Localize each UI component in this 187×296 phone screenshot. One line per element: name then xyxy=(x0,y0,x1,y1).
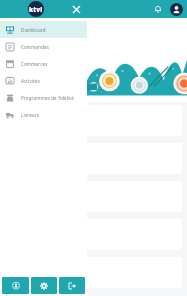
button[interactable]: NOMBRE D'OFFRES ACTIVES xyxy=(2,257,182,288)
staticText: AVIS xyxy=(9,111,18,116)
button[interactable]: ktvi home xyxy=(28,1,44,17)
button[interactable]: Account xyxy=(170,3,183,16)
button[interactable]: Notifications xyxy=(151,2,165,16)
button[interactable]: Close menu xyxy=(68,1,84,17)
button[interactable]: Commerces xyxy=(0,55,87,72)
button[interactable]: Activités xyxy=(0,72,87,89)
staticText: ktvi xyxy=(29,5,43,13)
staticText: Commerces xyxy=(21,61,48,67)
staticText: Commandes xyxy=(21,44,50,50)
staticText: Programmes de fidélité xyxy=(21,95,74,101)
button[interactable]: Programmes de fidélité xyxy=(0,89,87,106)
button[interactable]: Commandes xyxy=(0,38,87,55)
button[interactable]: Settings xyxy=(31,277,57,294)
button[interactable]: Livreurs xyxy=(0,106,87,123)
button[interactable]: AVIS xyxy=(2,105,182,136)
staticText: Livreurs xyxy=(21,112,40,118)
staticText: Dashboard xyxy=(21,27,46,33)
button[interactable]: Profile xyxy=(2,277,29,294)
button[interactable]: Log out xyxy=(59,277,85,294)
button[interactable]: Dashboard xyxy=(0,21,87,38)
staticText: Activités xyxy=(21,78,40,84)
